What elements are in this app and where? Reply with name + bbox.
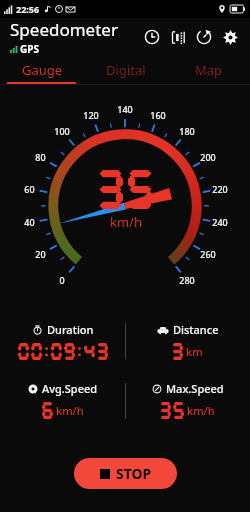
button[interactable]: HUD mode	[165, 24, 191, 50]
button[interactable]: Max.Speed	[125, 370, 250, 429]
staticText: 160	[150, 109, 166, 121]
staticText: 240	[212, 216, 228, 228]
staticText: Distance	[173, 322, 219, 337]
button[interactable]: Settings	[217, 24, 243, 50]
staticText: km/h	[187, 403, 215, 418]
staticText: 100	[54, 125, 70, 137]
staticText: 60	[24, 183, 35, 195]
staticText: 0	[59, 274, 65, 286]
button[interactable]: Gauge	[0, 56, 84, 84]
button[interactable]: Map	[167, 56, 250, 84]
staticText: km	[186, 344, 203, 359]
button[interactable]: Duration	[0, 311, 125, 370]
staticText: GPS	[20, 42, 39, 56]
staticText: Max.Speed	[166, 381, 224, 396]
staticText: 220	[212, 183, 228, 195]
staticText: 280	[179, 274, 195, 286]
staticText: STOP	[116, 464, 152, 483]
staticText: 20	[35, 248, 46, 260]
staticText: 120	[83, 109, 99, 121]
staticText: Digital	[106, 61, 146, 79]
button[interactable]: Distance	[125, 311, 250, 370]
button[interactable]: History	[191, 24, 217, 50]
staticText: Avg.Speed	[42, 381, 98, 396]
staticText: Speedometer	[10, 18, 118, 41]
staticText: Gauge	[22, 61, 63, 79]
staticText: 140	[117, 103, 133, 115]
staticText: Map	[195, 61, 223, 79]
button[interactable]: Timer	[139, 24, 165, 50]
staticText: 22:56	[16, 3, 40, 15]
staticText: km/h	[110, 213, 142, 231]
staticText: 80	[35, 151, 46, 163]
staticText: 40	[24, 216, 35, 228]
staticText: 200	[200, 151, 216, 163]
staticText: 180	[179, 125, 195, 137]
staticText: Duration	[47, 322, 94, 337]
staticText: km/h	[56, 403, 84, 418]
staticText: 260	[200, 248, 216, 260]
button[interactable]: Avg.Speed	[0, 370, 125, 429]
button[interactable]: STOP	[74, 458, 177, 489]
button[interactable]: Digital	[84, 56, 167, 84]
